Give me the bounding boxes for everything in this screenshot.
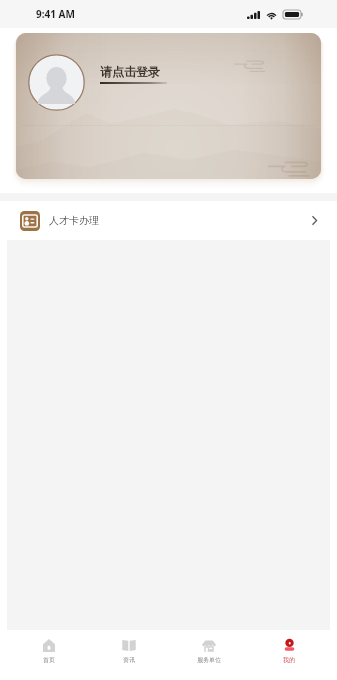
other: 我的 [284,639,295,652]
button[interactable]: 我的 [249,630,329,668]
button[interactable]: 请点击登录 [16,33,321,179]
other: 资讯 [122,640,136,651]
button[interactable]: 服务单位 [169,630,249,668]
staticText: 首页 [43,656,55,664]
staticText: 人才卡办理 [49,214,99,227]
button[interactable]: 首页 [8,630,89,668]
staticText: 服务单位 [197,656,221,664]
staticText: 资讯 [123,656,135,664]
other: 服务单位 [202,640,216,652]
button[interactable]: 资讯 [89,630,169,668]
staticText: 我的 [283,656,295,664]
staticText: 请点击登录 [100,64,160,79]
button[interactable]: 人才卡办理 [0,201,337,240]
staticText: 9:41 AM [36,7,75,21]
other: 首页 [43,639,55,652]
